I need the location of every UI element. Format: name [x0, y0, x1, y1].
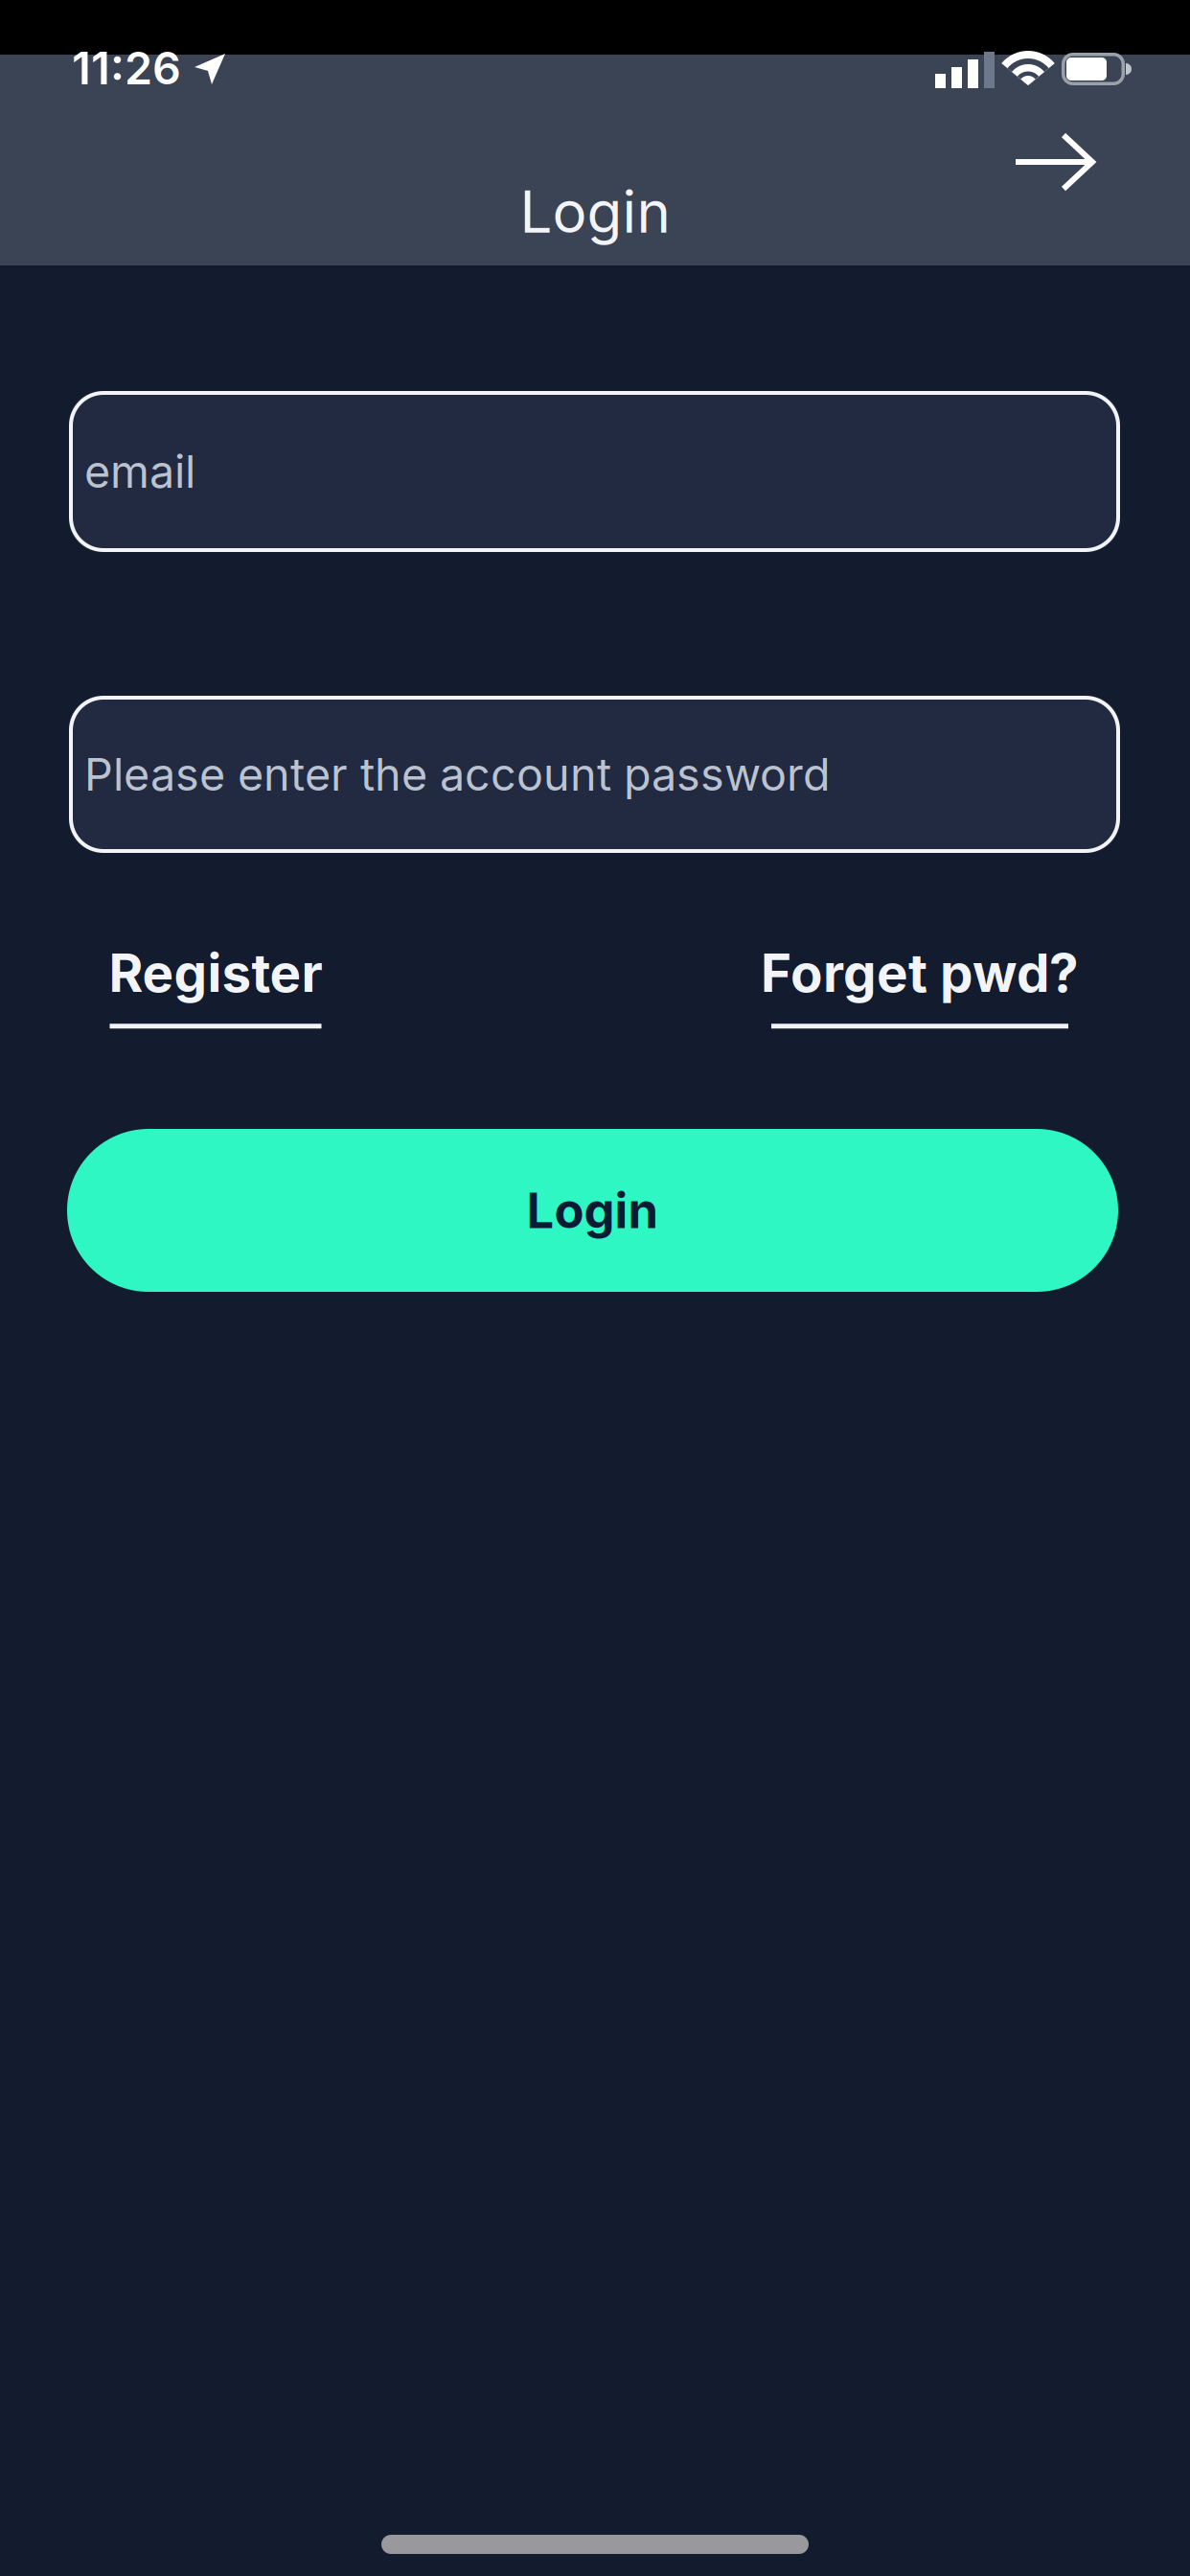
button[interactable]: email	[69, 391, 1120, 552]
staticText: Please enter the account password	[84, 748, 831, 801]
button[interactable]: Register	[109, 942, 322, 1029]
button[interactable]: Login	[67, 1129, 1118, 1292]
staticText: Login	[526, 1182, 659, 1239]
staticText: email	[84, 445, 195, 498]
button[interactable]: password	[69, 696, 1120, 853]
staticText: Forget pwd?	[761, 942, 1079, 1004]
staticText: Register	[109, 942, 322, 1004]
staticText: 11:26	[72, 42, 181, 94]
button[interactable]: Forget pwd?	[761, 942, 1079, 1029]
staticText: Login	[520, 178, 670, 246]
button[interactable]: Next	[996, 114, 1111, 210]
